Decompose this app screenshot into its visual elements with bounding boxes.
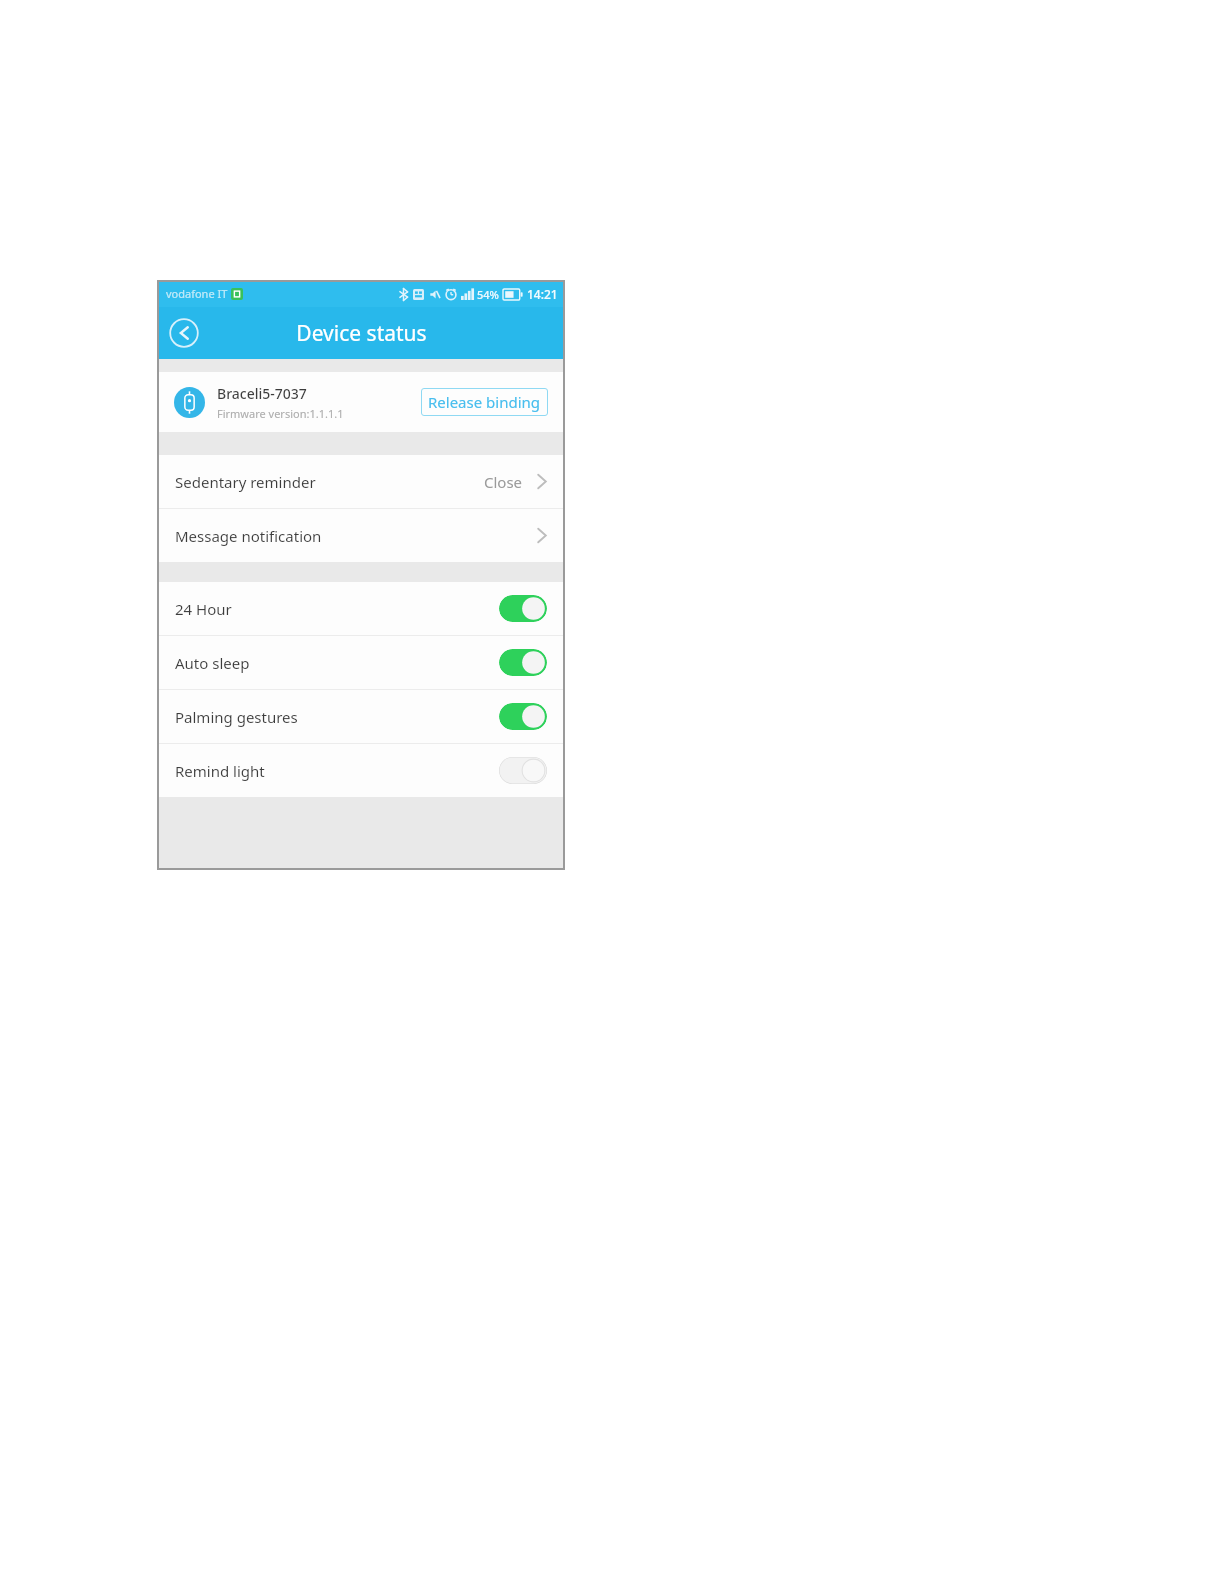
staticText: Palming gestures — [175, 707, 499, 727]
button[interactable]: 24 Hour — [157, 582, 565, 635]
staticText: Remind light — [175, 761, 499, 781]
staticText: Auto sleep — [175, 653, 499, 673]
staticText: Sedentary reminder — [175, 472, 484, 492]
staticText: 24 Hour — [175, 599, 499, 619]
button[interactable]: Back — [165, 314, 203, 352]
button[interactable]: Braceli5-7037 — [157, 372, 565, 432]
button[interactable]: Toggle off — [499, 757, 547, 784]
button[interactable]: Auto sleep — [157, 636, 565, 689]
button[interactable]: Message notification — [157, 509, 565, 562]
staticText: Close — [484, 472, 523, 492]
staticText: 14:21 — [527, 286, 558, 302]
button[interactable]: Remind light — [157, 744, 565, 797]
staticText: Release binding — [428, 392, 541, 412]
button[interactable]: Palming gestures — [157, 690, 565, 743]
staticText: Message notification — [175, 526, 537, 546]
button[interactable]: Release binding — [421, 388, 548, 416]
button[interactable]: Toggle on — [499, 595, 547, 622]
staticText: Braceli5-7037 — [217, 384, 307, 403]
staticText: vodafone IT — [166, 286, 228, 301]
staticText: Firmware version:1.1.1.1 — [217, 406, 344, 421]
staticText: Device status — [296, 319, 427, 348]
button[interactable]: Toggle on — [499, 703, 547, 730]
button[interactable]: Toggle on — [499, 649, 547, 676]
staticText: 54% — [477, 287, 499, 302]
button[interactable]: Sedentary reminder — [157, 455, 565, 508]
